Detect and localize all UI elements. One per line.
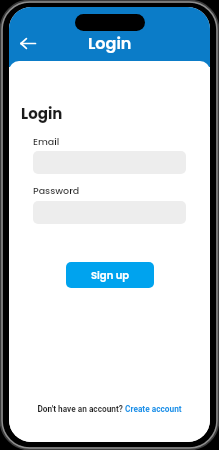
staticText: Login bbox=[88, 32, 132, 54]
button[interactable]: Sign up bbox=[66, 262, 154, 288]
staticText: Login bbox=[21, 103, 63, 124]
button[interactable]: Don't have an account? Create account bbox=[9, 404, 210, 442]
staticText: Password bbox=[33, 184, 80, 197]
button[interactable]: Back bbox=[15, 30, 41, 56]
staticText: Email bbox=[33, 135, 60, 148]
staticText: Sign up bbox=[91, 268, 130, 282]
staticText: Don't have an account? Create account bbox=[37, 404, 182, 414]
